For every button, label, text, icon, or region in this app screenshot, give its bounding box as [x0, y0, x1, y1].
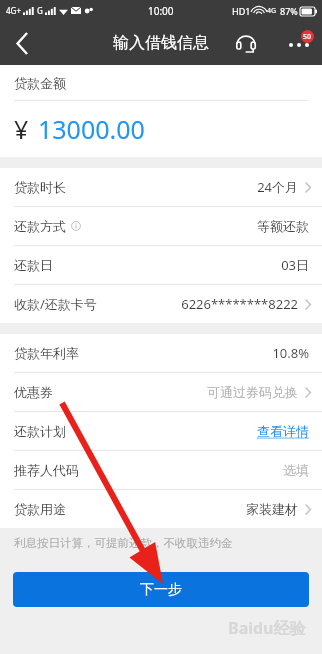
staticText: 4G: [267, 6, 277, 16]
staticText: 13000.00: [38, 112, 145, 146]
staticText: 贷款年利率: [14, 345, 79, 361]
staticText: 推荐人代码: [14, 462, 79, 478]
staticText: 下一步: [140, 581, 182, 599]
staticText: 4G+: [6, 5, 21, 16]
staticText: 等额还款: [257, 218, 309, 234]
staticText: 还款计划: [14, 423, 66, 439]
staticText: 50: [303, 32, 312, 42]
staticText: 24个月: [257, 178, 298, 196]
staticText: HD1: [232, 5, 251, 17]
button[interactable]: 收款/还款卡号: [0, 285, 322, 323]
staticText: 还款方式: [14, 218, 66, 234]
button[interactable]: Back: [0, 21, 44, 65]
button[interactable]: 更多: [276, 21, 322, 65]
staticText: 选填: [283, 462, 309, 478]
button[interactable]: 贷款用途: [0, 490, 322, 528]
staticText: 家装建材: [246, 501, 298, 517]
staticText: 可通过券码兑换: [207, 384, 298, 400]
staticText: G: [37, 5, 43, 16]
staticText: 收款/还款卡号: [14, 295, 97, 313]
button[interactable]: 还款计划: [0, 412, 322, 451]
staticText: 03日: [281, 256, 309, 274]
staticText: Baidu经验: [228, 617, 306, 639]
staticText: 查看详情: [257, 423, 309, 439]
button[interactable]: 还款日: [0, 246, 322, 285]
staticText: 贷款时长: [14, 179, 66, 195]
staticText: ¥: [14, 112, 29, 146]
staticText: 10.8%: [272, 344, 309, 362]
staticText: 10:00: [148, 4, 174, 18]
staticText: 优惠券: [14, 384, 53, 400]
button[interactable]: 下一步: [13, 572, 309, 607]
staticText: 输入借钱信息: [113, 33, 209, 53]
button[interactable]: 客服: [227, 24, 265, 62]
button[interactable]: 贷款时长: [0, 168, 322, 207]
staticText: 87%: [280, 5, 298, 17]
button[interactable]: 优惠券: [0, 373, 322, 412]
button[interactable]: 还款方式: [0, 207, 322, 246]
staticText: 6226********8222: [181, 295, 298, 313]
button[interactable]: 推荐人代码: [0, 451, 322, 490]
staticText: 利息按日计算，可提前还款，不收取违约金: [14, 536, 233, 550]
staticText: 贷款金额: [14, 75, 66, 91]
staticText: 贷款用途: [14, 501, 66, 517]
button[interactable]: 贷款年利率: [0, 334, 322, 373]
staticText: 还款日: [14, 257, 53, 273]
